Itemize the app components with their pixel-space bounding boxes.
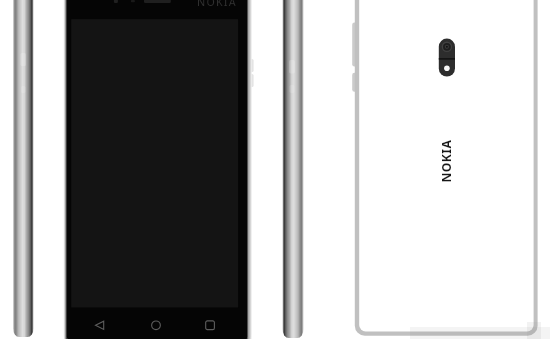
- button[interactable]: Back: [92, 317, 108, 333]
- button[interactable]: Recent apps: [202, 317, 218, 333]
- button[interactable]: Home: [148, 317, 164, 333]
